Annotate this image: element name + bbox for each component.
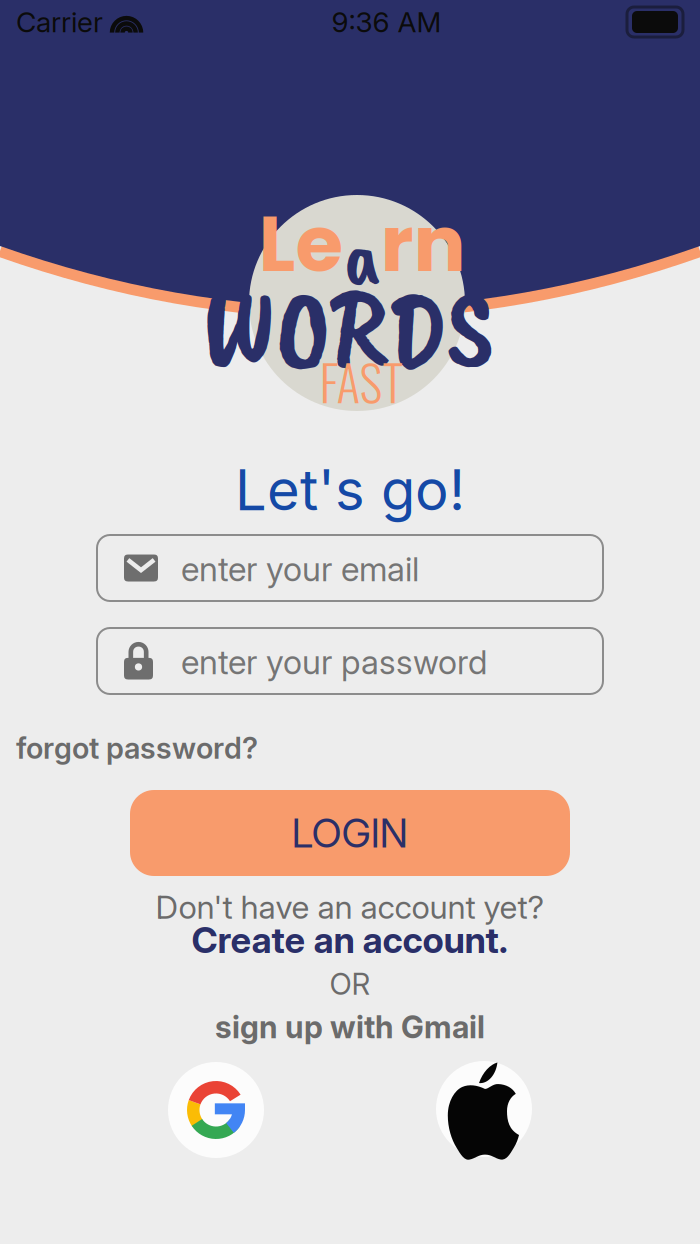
staticText: enter your email <box>181 549 419 589</box>
button[interactable]: Create an account. <box>191 918 508 962</box>
staticText: Carrier <box>16 5 103 39</box>
staticText: Don't have an account yet? <box>155 888 544 926</box>
staticText: LOGIN <box>291 809 408 857</box>
button[interactable]: enter your password <box>97 628 603 694</box>
staticText: Let's go! <box>235 456 465 524</box>
staticText: OR <box>329 966 370 1002</box>
button[interactable]: forgot password? <box>16 730 336 766</box>
staticText: Create an account. <box>191 918 508 962</box>
staticText: forgot password? <box>16 730 258 766</box>
button[interactable]: enter your email <box>97 535 603 601</box>
staticText: FAST <box>319 344 402 417</box>
staticText: WORDS <box>202 256 494 397</box>
button[interactable]: LOGIN <box>130 790 570 876</box>
staticText: 9:36 AM <box>331 5 441 39</box>
button[interactable]: Sign up with Google <box>168 1062 264 1158</box>
staticText: enter your password <box>181 642 487 682</box>
button[interactable]: Sign up with Apple <box>436 1062 532 1158</box>
staticText: a <box>343 202 380 310</box>
staticText: Le <box>258 190 343 298</box>
staticText: sign up with Gmail <box>215 1008 485 1045</box>
staticText: rn <box>380 190 465 298</box>
